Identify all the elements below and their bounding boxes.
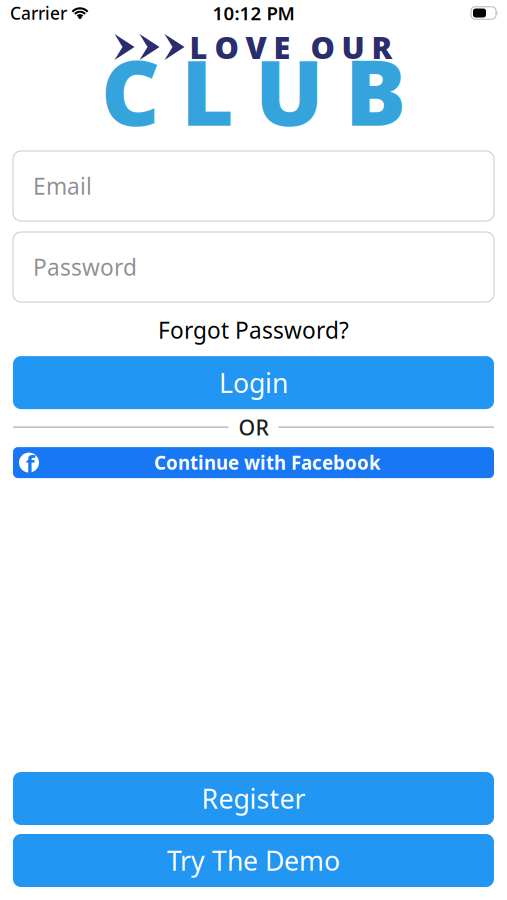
staticText: B	[345, 30, 406, 151]
staticText: Login	[219, 365, 288, 400]
staticText: V	[245, 27, 266, 67]
staticText: OR	[238, 413, 268, 441]
staticText: C	[101, 30, 160, 151]
button[interactable]: Continue with Facebook	[13, 447, 494, 478]
button[interactable]: Register	[13, 772, 494, 825]
staticText: Password	[33, 252, 137, 282]
staticText: L	[189, 27, 207, 67]
staticText: Forgot Password?	[158, 315, 349, 345]
staticText: E	[273, 27, 290, 67]
staticText: R	[371, 27, 392, 67]
button[interactable]: Try The Demo	[13, 834, 494, 887]
staticText: Register	[201, 781, 305, 816]
button[interactable]: Forgot Password?	[158, 315, 349, 345]
staticText: O	[214, 27, 238, 67]
staticText: Try The Demo	[167, 843, 340, 878]
staticText: U	[341, 27, 364, 67]
staticText: Continue with Facebook	[154, 450, 381, 475]
staticText: 10:12 PM	[212, 1, 294, 25]
staticText: Carrier	[10, 1, 67, 24]
staticText: L	[181, 30, 234, 151]
button[interactable]: Login	[13, 356, 494, 409]
staticText: Email	[33, 171, 92, 201]
staticText: O	[310, 27, 334, 67]
staticText: f	[26, 449, 35, 479]
staticText: U	[255, 30, 324, 151]
